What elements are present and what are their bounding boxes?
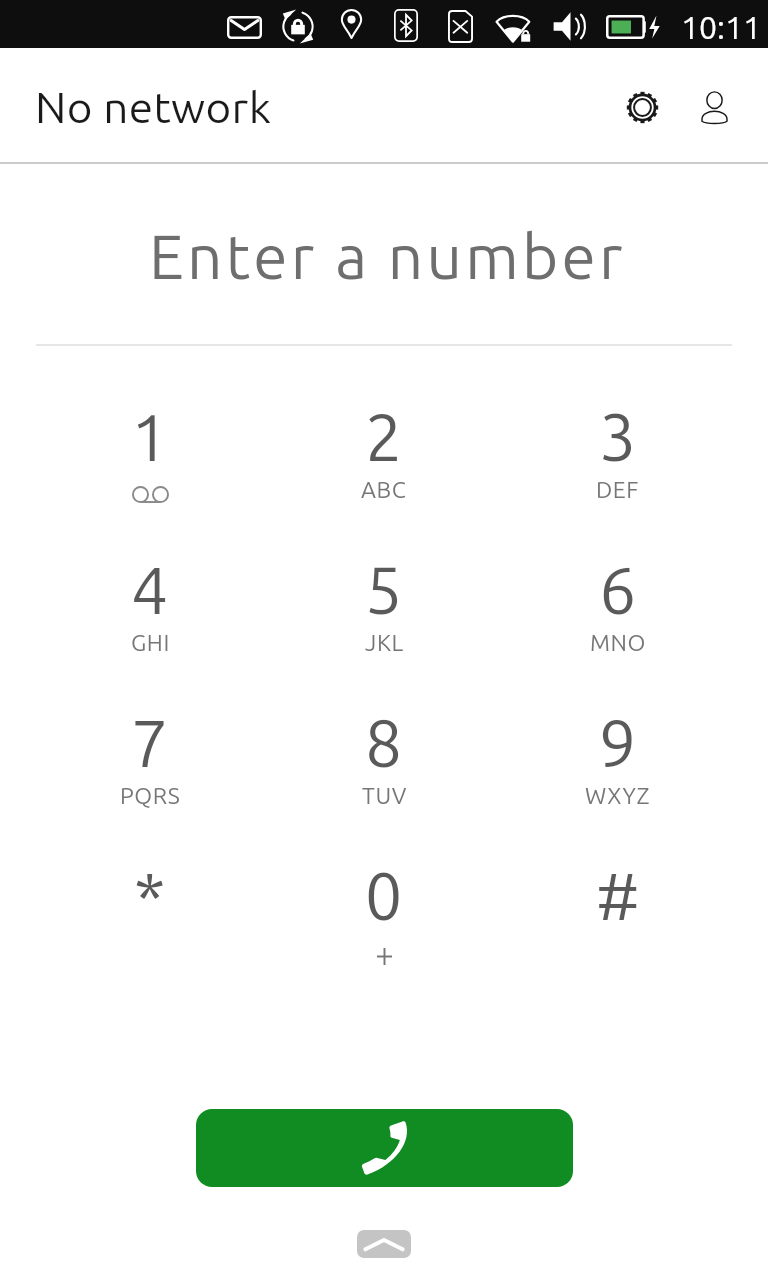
button[interactable]: * — [33, 852, 267, 1005]
staticText: MNO — [590, 630, 647, 656]
button[interactable]: 4 — [33, 546, 267, 699]
staticText: 0 — [365, 858, 403, 932]
button[interactable]: 9 — [501, 699, 735, 852]
staticText: 8 — [365, 705, 403, 779]
staticText: JKL — [365, 630, 404, 656]
staticText: * — [134, 858, 166, 932]
staticText: No network — [35, 82, 272, 131]
staticText: # — [596, 858, 640, 932]
button[interactable]: 2 — [267, 393, 501, 546]
staticText: 3 — [599, 399, 637, 473]
staticText: WXYZ — [585, 783, 651, 809]
button[interactable]: 0 — [267, 852, 501, 1005]
button[interactable]: 7 — [33, 699, 267, 852]
button[interactable]: # — [501, 852, 735, 1005]
button[interactable]: Settings — [612, 77, 672, 137]
staticText: TUV — [362, 783, 407, 809]
staticText: 5 — [365, 552, 403, 626]
staticText: 6 — [599, 552, 637, 626]
button[interactable]: Contacts — [684, 78, 744, 138]
staticText: 2 — [365, 399, 403, 473]
staticText: DEF — [596, 477, 640, 503]
staticText: 4 — [131, 552, 169, 626]
button[interactable]: 8 — [267, 699, 501, 852]
staticText: GHI — [131, 630, 170, 656]
button[interactable]: 6 — [501, 546, 735, 699]
button[interactable]: 3 — [501, 393, 735, 546]
button[interactable]: Show more — [357, 1230, 411, 1258]
button[interactable]: 1 — [33, 393, 267, 546]
staticText: 1 — [131, 399, 169, 473]
staticText: Enter a number — [149, 221, 626, 291]
staticText: 7 — [131, 705, 169, 779]
staticText: 9 — [599, 705, 637, 779]
staticText: 10:11 — [681, 9, 762, 45]
button[interactable]: Call — [196, 1109, 573, 1187]
button[interactable]: 5 — [267, 546, 501, 699]
staticText: PQRS — [120, 783, 181, 809]
staticText: ABC — [361, 477, 407, 503]
